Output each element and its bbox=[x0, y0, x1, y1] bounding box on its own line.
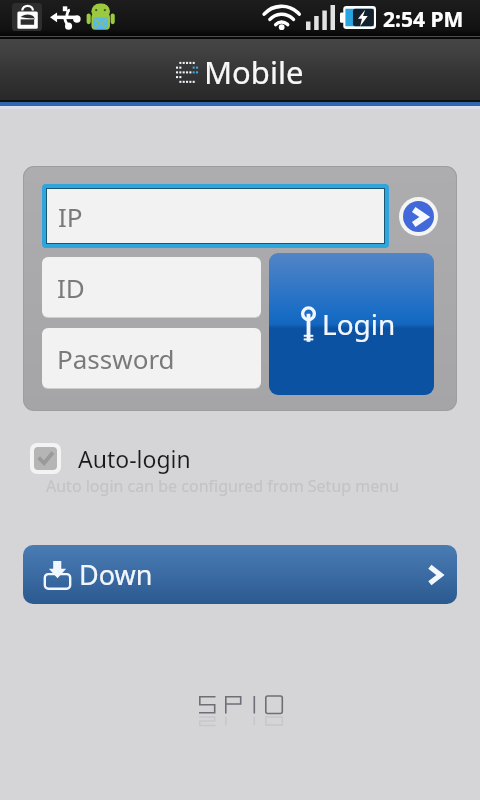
staticText: IP bbox=[58, 199, 83, 234]
staticText: ID bbox=[57, 270, 85, 305]
button[interactable]: ID bbox=[42, 257, 261, 317]
button[interactable]: IP bbox=[47, 189, 384, 243]
staticText: Login bbox=[322, 305, 396, 343]
button[interactable]: Login bbox=[269, 253, 434, 395]
button[interactable]: Auto-login checkbox bbox=[34, 447, 57, 470]
staticText: 2:54 PM bbox=[383, 5, 464, 34]
staticText: Password bbox=[57, 341, 175, 376]
staticText: Auto-login bbox=[78, 443, 191, 474]
button[interactable]: Password bbox=[42, 328, 261, 388]
button[interactable]: Down bbox=[23, 545, 457, 604]
staticText: Mobile bbox=[204, 51, 304, 93]
staticText: Auto login can be configured from Setup … bbox=[46, 475, 400, 497]
staticText: Down bbox=[79, 556, 153, 593]
button[interactable]: Go bbox=[403, 201, 434, 232]
